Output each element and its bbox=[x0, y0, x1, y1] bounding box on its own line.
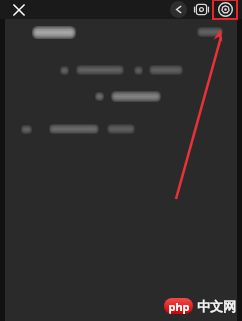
button[interactable]: Settings bbox=[213, 0, 237, 19]
staticText: php bbox=[168, 299, 190, 314]
button[interactable]: Back bbox=[167, 0, 189, 19]
staticText: 中文网 bbox=[197, 298, 236, 314]
button[interactable]: Capture bbox=[190, 0, 212, 19]
button[interactable]: Close bbox=[8, 0, 30, 19]
